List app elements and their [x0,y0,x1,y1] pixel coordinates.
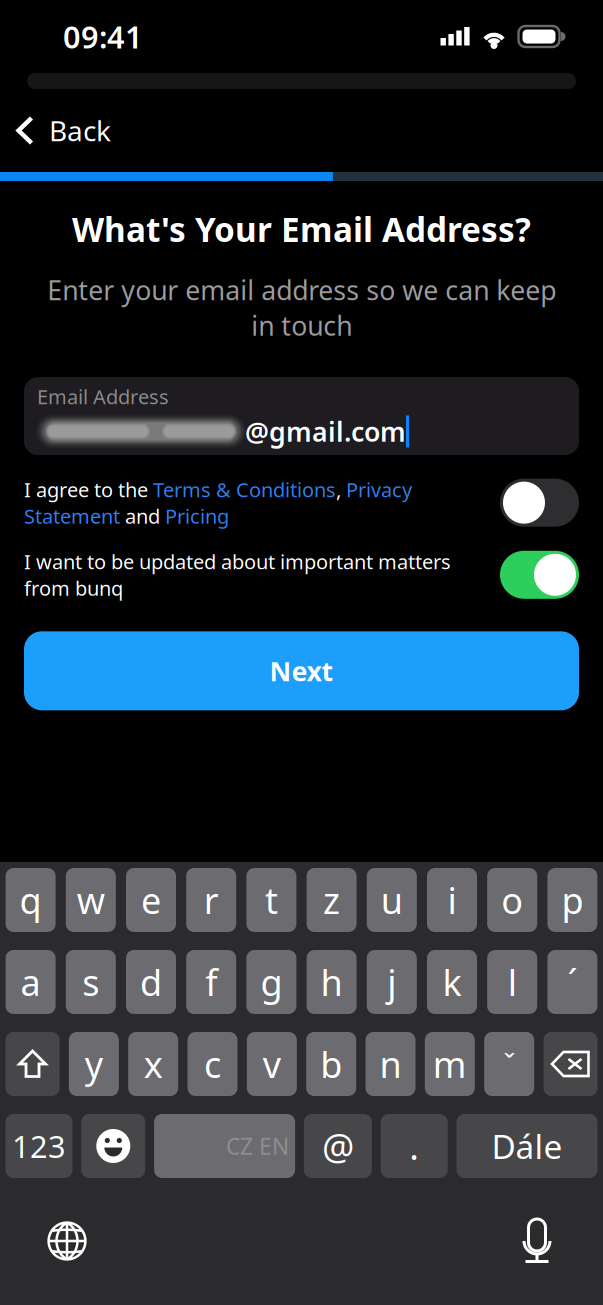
staticText: I agree to the Terms & Conditions, Priva… [24,476,412,529]
button[interactable]: Next keyboard [41,1215,93,1267]
staticText: b [320,1040,342,1088]
staticText: z [323,876,340,924]
button[interactable]: t [246,868,296,932]
button[interactable]: ´ [547,950,597,1014]
staticText: n [379,1040,401,1088]
button[interactable]: Space [154,1114,295,1178]
staticText: Dále [491,1124,562,1168]
staticText: @gmail.com [245,414,406,449]
button[interactable]: Emoji [81,1114,145,1178]
staticText: l [508,958,517,1006]
staticText: t [265,876,278,924]
staticText: i [447,876,456,924]
staticText: CZ EN [226,1131,289,1161]
button[interactable]: h [307,950,357,1014]
staticText: e [141,876,161,924]
button[interactable]: p [547,868,597,932]
staticText: c [204,1040,221,1088]
button[interactable]: m [425,1032,475,1096]
button[interactable]: c [187,1032,237,1096]
staticText: Next [269,653,333,688]
button[interactable]: o [487,868,537,932]
staticText: g [260,958,282,1006]
button[interactable]: w [66,868,116,932]
button[interactable]: r [186,868,236,932]
button[interactable]: 123 [5,1114,72,1178]
staticText: . [409,1122,419,1170]
button[interactable]: q [6,868,56,932]
staticText: d [140,958,162,1006]
staticText: a [21,958,41,1006]
button[interactable]: a [6,950,56,1014]
staticText: w [77,876,105,924]
button[interactable]: Shift [5,1032,59,1096]
button[interactable]: Dále [456,1114,597,1178]
button[interactable]: l [487,950,537,1014]
staticText: Enter your email address so we can keep … [47,272,556,343]
button[interactable]: b [306,1032,356,1096]
button[interactable]: g [246,950,296,1014]
staticText: k [442,958,461,1006]
button[interactable]: i [427,868,477,932]
staticText: Email Address [37,383,169,410]
button[interactable]: ˇ [484,1032,534,1096]
button[interactable]: Agree to terms [500,479,579,527]
button[interactable]: k [427,950,477,1014]
staticText: y [85,1040,103,1088]
staticText: u [381,876,403,924]
button[interactable]: x [128,1032,178,1096]
button[interactable]: Back [1,97,129,163]
staticText: 123 [12,1126,66,1166]
button[interactable]: d [126,950,176,1014]
staticText: o [501,876,523,924]
button[interactable]: Delete [543,1032,597,1096]
staticText: Back [49,112,111,149]
staticText: v [263,1040,281,1088]
staticText: r [204,876,219,924]
button[interactable]: Next [24,631,579,710]
button[interactable]: j [367,950,417,1014]
staticText: ´ [567,958,577,1006]
staticText: s [82,958,99,1006]
button[interactable]: n [365,1032,415,1096]
button[interactable]: s [66,950,116,1014]
button[interactable]: y [69,1032,119,1096]
staticText: 09:41 [63,16,143,57]
staticText: @ [322,1122,354,1170]
button[interactable]: . [381,1114,448,1178]
button[interactable]: z [307,868,357,932]
staticText: j [387,958,396,1006]
staticText: q [20,876,42,924]
staticText: f [205,958,217,1006]
staticText: p [561,876,583,924]
staticText: I want to be updated about important mat… [24,548,451,601]
button[interactable]: Receive updates [500,551,579,599]
button[interactable]: u [367,868,417,932]
staticText: ˇ [503,1044,515,1083]
button[interactable]: v [247,1032,297,1096]
staticText: What's Your Email Address? [72,207,531,251]
button[interactable]: f [186,950,236,1014]
staticText: h [321,958,343,1006]
button[interactable]: e [126,868,176,932]
staticText: m [433,1040,467,1088]
staticText: x [144,1040,163,1088]
button[interactable]: @ [304,1114,372,1178]
button[interactable]: Dictate [517,1215,557,1267]
